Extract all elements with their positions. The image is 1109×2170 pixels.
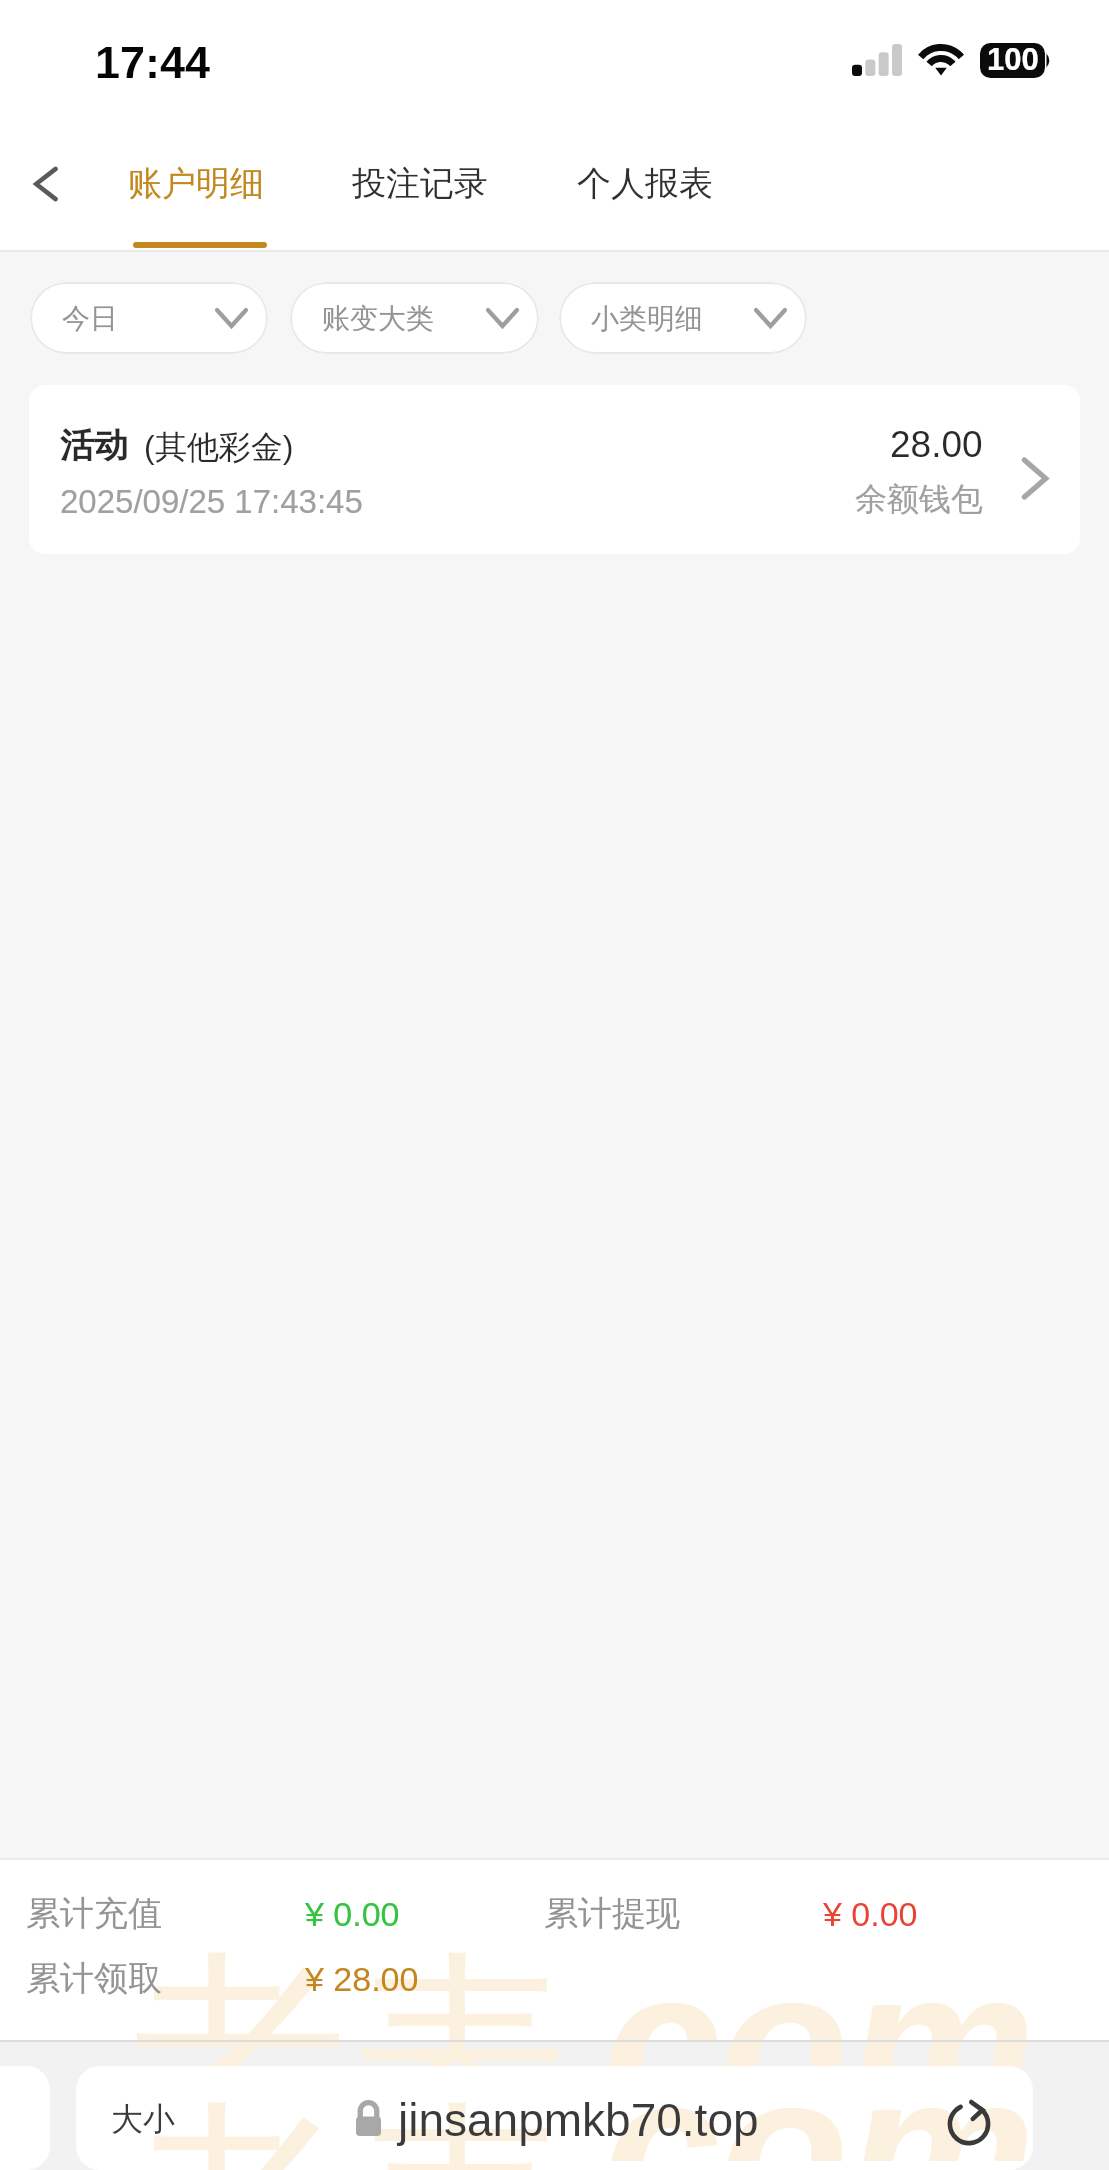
staticText: .com xyxy=(545,1926,1036,2161)
staticText: 个人报表 xyxy=(577,162,713,205)
staticText: 老表 xyxy=(126,1921,570,2170)
staticText: (其他彩金) xyxy=(144,427,294,467)
button[interactable]: 大小 xyxy=(111,2099,175,2139)
staticText: ¥ 0.00 xyxy=(305,1895,400,1933)
staticText: 累计充值 xyxy=(26,1892,162,1935)
staticText: 28.00 xyxy=(890,424,983,465)
staticText: 17:44 xyxy=(95,37,211,87)
button[interactable]: 小类明细 xyxy=(559,282,807,354)
button[interactable]: 今日 xyxy=(30,282,268,354)
button[interactable]: 账户明细 xyxy=(128,162,264,205)
staticText: 余额钱包 xyxy=(855,479,983,519)
staticText: 2025/09/25 17:43:45 xyxy=(60,483,363,520)
staticText: 老表 xyxy=(126,2071,570,2170)
staticText: 账户明细 xyxy=(128,162,264,205)
button[interactable]: 个人报表 xyxy=(577,162,713,205)
staticText: 活动 xyxy=(60,424,128,467)
button[interactable]: 投注记录 xyxy=(352,162,488,205)
staticText: ¥ 28.00 xyxy=(305,1960,419,1998)
staticText: .com xyxy=(545,2031,1036,2161)
staticText: 小类明细 xyxy=(591,301,703,336)
staticText: 累计领取 xyxy=(26,1957,162,2000)
button[interactable]: 活动 xyxy=(29,385,1080,554)
staticText: 投注记录 xyxy=(352,162,488,205)
staticText: 账变大类 xyxy=(322,301,434,336)
staticText: 100 xyxy=(987,42,1039,77)
button[interactable]: Reload xyxy=(948,2094,990,2144)
staticText: 今日 xyxy=(62,301,118,336)
button[interactable]: 账变大类 xyxy=(290,282,539,354)
staticText: jinsanpmkb70.top xyxy=(398,2094,759,2145)
staticText: 大小 xyxy=(111,2099,175,2139)
staticText: ¥ 0.00 xyxy=(823,1895,918,1933)
button[interactable]: Back xyxy=(16,153,78,215)
staticText: 累计提现 xyxy=(544,1892,680,1935)
